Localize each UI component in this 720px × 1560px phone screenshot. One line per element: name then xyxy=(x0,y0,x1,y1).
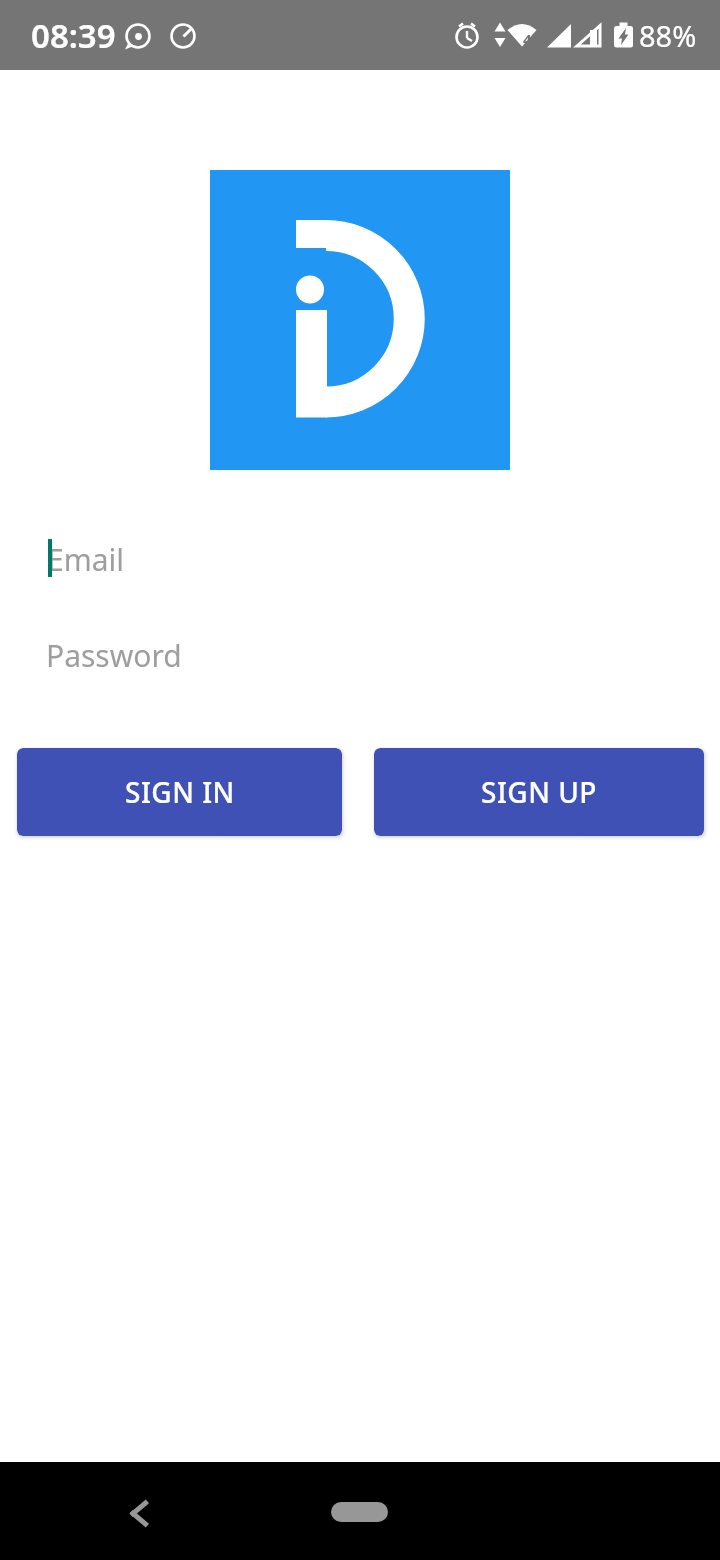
button[interactable] xyxy=(112,1486,166,1540)
staticText: 4 xyxy=(523,29,532,49)
staticText: 08:39 xyxy=(31,13,116,58)
button[interactable]: SIGN IN xyxy=(17,748,342,836)
staticText: SIGN UP xyxy=(481,773,597,811)
staticText: SIGN IN xyxy=(125,773,235,811)
button[interactable]: Email xyxy=(40,528,680,588)
staticText: Email xyxy=(47,539,125,580)
button[interactable]: SIGN UP xyxy=(374,748,704,836)
button[interactable] xyxy=(331,1502,388,1522)
button[interactable]: Password xyxy=(40,626,680,686)
staticText: 88% xyxy=(639,16,697,55)
staticText: Password xyxy=(46,635,182,676)
